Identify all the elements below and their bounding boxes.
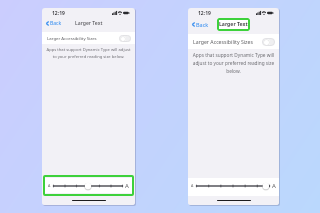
button[interactable]: Larger Accessibility Sizes xyxy=(42,32,135,44)
staticText: Apps that support Dynamic Type will adju… xyxy=(190,52,277,74)
staticText: Back xyxy=(50,20,62,27)
staticText: 12:19 xyxy=(198,10,211,17)
staticText: A xyxy=(48,183,51,188)
staticText: Larger Text xyxy=(219,21,248,28)
staticText: Larger Accessibility Sizes xyxy=(193,38,253,45)
button[interactable]: Back xyxy=(188,19,212,30)
staticText: A xyxy=(125,182,129,190)
button[interactable]: Back xyxy=(42,18,65,29)
staticText: A xyxy=(272,182,276,190)
staticText: Apps that support Dynamic Type will adju… xyxy=(45,47,132,59)
staticText: Back xyxy=(196,21,209,28)
staticText: A xyxy=(191,183,194,188)
button[interactable]: Larger Accessibility Sizes xyxy=(188,34,279,49)
button[interactable]: A xyxy=(188,178,279,193)
staticText: Larger Text xyxy=(75,20,103,27)
button[interactable]: A xyxy=(45,178,132,193)
staticText: 12:19 xyxy=(52,10,65,17)
staticText: Larger Accessibility Sizes xyxy=(47,35,97,41)
